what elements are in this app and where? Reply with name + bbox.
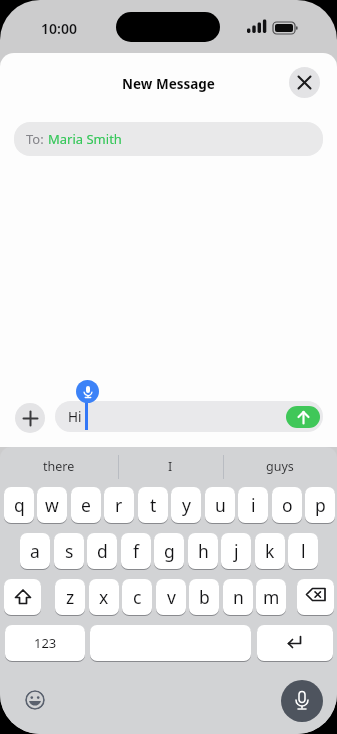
staticText: 123 [34,634,57,652]
button[interactable]: t [138,487,168,523]
staticText: s [65,539,74,563]
staticText: g [164,539,175,563]
button[interactable]: c [122,579,152,615]
button[interactable]: s [54,533,84,569]
button[interactable]: n [223,579,253,615]
button[interactable]: guys [223,453,337,480]
staticText: I [168,458,173,475]
staticText: u [215,493,226,517]
button[interactable]: there [0,453,118,480]
button[interactable]: Hi [55,401,323,432]
staticText: z [66,585,75,609]
button[interactable] [4,579,41,615]
button[interactable]: r [104,487,134,523]
staticText: m [263,585,280,609]
staticText: k [265,539,275,563]
button[interactable]: f [121,533,151,569]
button[interactable]: j [221,533,251,569]
button[interactable] [289,67,320,98]
staticText: n [233,585,244,609]
button[interactable] [297,579,334,615]
button[interactable]: x [89,579,119,615]
staticText: guys [266,458,294,475]
staticText: q [14,493,25,517]
button[interactable]: I [118,453,223,480]
button[interactable]: o [272,487,302,523]
button[interactable] [15,403,45,433]
staticText: a [30,539,40,563]
button[interactable] [286,406,320,428]
staticText: f [133,539,140,563]
staticText: Maria Smith [48,130,122,148]
staticText: New Message [122,75,215,93]
button[interactable]: i [238,487,268,523]
button[interactable]: w [37,487,67,523]
staticText: j [234,539,239,563]
button[interactable]: z [55,579,85,615]
staticText: b [199,585,210,609]
button[interactable]: 123 [5,625,85,661]
button[interactable]: m [256,579,286,615]
staticText: v [167,585,176,609]
button[interactable]: a [20,533,50,569]
button[interactable]: q [4,487,34,523]
button[interactable]: v [156,579,186,615]
staticText: r [115,493,123,517]
staticText: 10:00 [41,19,77,38]
staticText: i [251,493,256,517]
button[interactable] [281,680,323,722]
staticText: p [315,493,326,517]
staticText: there [43,458,75,475]
button[interactable]: d [87,533,117,569]
button[interactable] [90,625,251,661]
button[interactable] [25,690,45,710]
staticText: t [150,493,157,517]
button[interactable]: k [255,533,285,569]
staticText: x [99,585,109,609]
button[interactable]: To: [14,122,323,156]
staticText: To: [26,130,48,148]
button[interactable]: h [188,533,218,569]
button[interactable] [257,625,333,661]
staticText: w [45,493,59,517]
button[interactable]: l [288,533,318,569]
staticText: o [282,493,293,517]
staticText: e [81,493,91,517]
button[interactable]: b [189,579,219,615]
button[interactable]: p [305,487,335,523]
button[interactable]: u [205,487,235,523]
staticText: l [301,539,306,563]
staticText: y [182,493,191,517]
staticText: Hi [68,408,82,426]
staticText: h [198,539,209,563]
button[interactable]: y [171,487,201,523]
staticText: c [133,585,142,609]
button[interactable]: g [154,533,184,569]
button[interactable]: e [71,487,101,523]
staticText: d [97,539,108,563]
